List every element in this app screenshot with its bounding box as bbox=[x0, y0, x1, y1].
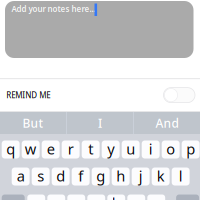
staticText: I bbox=[98, 115, 102, 131]
button[interactable]: REMIND ME bbox=[0, 79, 200, 111]
button[interactable]: a bbox=[12, 167, 30, 185]
staticText: z bbox=[33, 193, 40, 200]
staticText: e bbox=[47, 139, 55, 159]
button[interactable]: p bbox=[182, 140, 200, 158]
button[interactable]: z bbox=[27, 194, 45, 200]
button[interactable]: f bbox=[72, 167, 90, 185]
staticText: a bbox=[17, 166, 25, 186]
button[interactable]: Add your notes here... bbox=[5, 1, 193, 58]
staticText: v bbox=[93, 193, 100, 200]
staticText: q bbox=[6, 139, 15, 159]
button[interactable]: x bbox=[47, 194, 65, 200]
staticText: j bbox=[139, 166, 143, 186]
staticText: REMIND ME bbox=[6, 90, 50, 100]
button[interactable]: Shift bbox=[2, 194, 25, 200]
staticText: l bbox=[179, 166, 183, 186]
staticText: f bbox=[78, 166, 83, 186]
button[interactable]: d bbox=[52, 167, 70, 185]
staticText: k bbox=[157, 166, 165, 186]
button[interactable]: j bbox=[132, 167, 150, 185]
button[interactable]: v bbox=[87, 194, 105, 200]
button[interactable]: n bbox=[127, 194, 145, 200]
staticText: m bbox=[149, 193, 163, 200]
staticText: g bbox=[96, 166, 105, 186]
button[interactable]: e bbox=[42, 140, 60, 158]
button[interactable]: g bbox=[92, 167, 110, 185]
staticText: i bbox=[149, 139, 153, 159]
button[interactable]: h bbox=[112, 167, 130, 185]
button[interactable]: r bbox=[62, 140, 80, 158]
button[interactable]: But bbox=[0, 112, 66, 134]
staticText: s bbox=[37, 166, 44, 186]
button[interactable]: And bbox=[134, 112, 200, 134]
staticText: x bbox=[52, 193, 60, 200]
staticText: t bbox=[88, 139, 93, 159]
staticText: n bbox=[132, 193, 141, 200]
button[interactable]: m bbox=[147, 194, 165, 200]
button[interactable]: Delete bbox=[176, 194, 199, 200]
button[interactable]: s bbox=[32, 167, 50, 185]
button[interactable]: l bbox=[172, 167, 190, 185]
staticText: h bbox=[116, 166, 125, 186]
staticText: w bbox=[25, 139, 37, 159]
button[interactable]: o bbox=[162, 140, 180, 158]
button[interactable]: I bbox=[67, 112, 133, 134]
staticText: b bbox=[112, 193, 121, 200]
staticText: o bbox=[166, 139, 175, 159]
button[interactable]: y bbox=[102, 140, 120, 158]
button[interactable]: i bbox=[142, 140, 160, 158]
button[interactable]: t bbox=[82, 140, 100, 158]
button[interactable]: b bbox=[107, 194, 125, 200]
staticText: c bbox=[73, 193, 80, 200]
staticText: Add your notes here... bbox=[11, 3, 95, 14]
staticText: d bbox=[56, 166, 65, 186]
staticText: y bbox=[107, 139, 114, 159]
button[interactable]: w bbox=[22, 140, 40, 158]
staticText: And bbox=[155, 115, 178, 131]
staticText: p bbox=[186, 139, 195, 159]
staticText: u bbox=[126, 139, 135, 159]
button[interactable]: c bbox=[67, 194, 85, 200]
button[interactable]: u bbox=[122, 140, 140, 158]
staticText: r bbox=[68, 139, 74, 159]
button[interactable]: q bbox=[2, 140, 20, 158]
staticText: But bbox=[22, 115, 43, 131]
button[interactable]: k bbox=[152, 167, 170, 185]
